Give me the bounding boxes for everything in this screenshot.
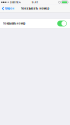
button[interactable]: Телефон — [0, 4, 17, 12]
button[interactable]: Показывать номер — [0, 18, 70, 28]
staticText: 9:41 — [32, 1, 38, 4]
staticText: Показывать номер — [20, 7, 49, 10]
staticText: Показывать номер — [3, 22, 26, 25]
staticText: Телефон — [5, 7, 15, 10]
staticText: Beeline — [10, 1, 18, 4]
